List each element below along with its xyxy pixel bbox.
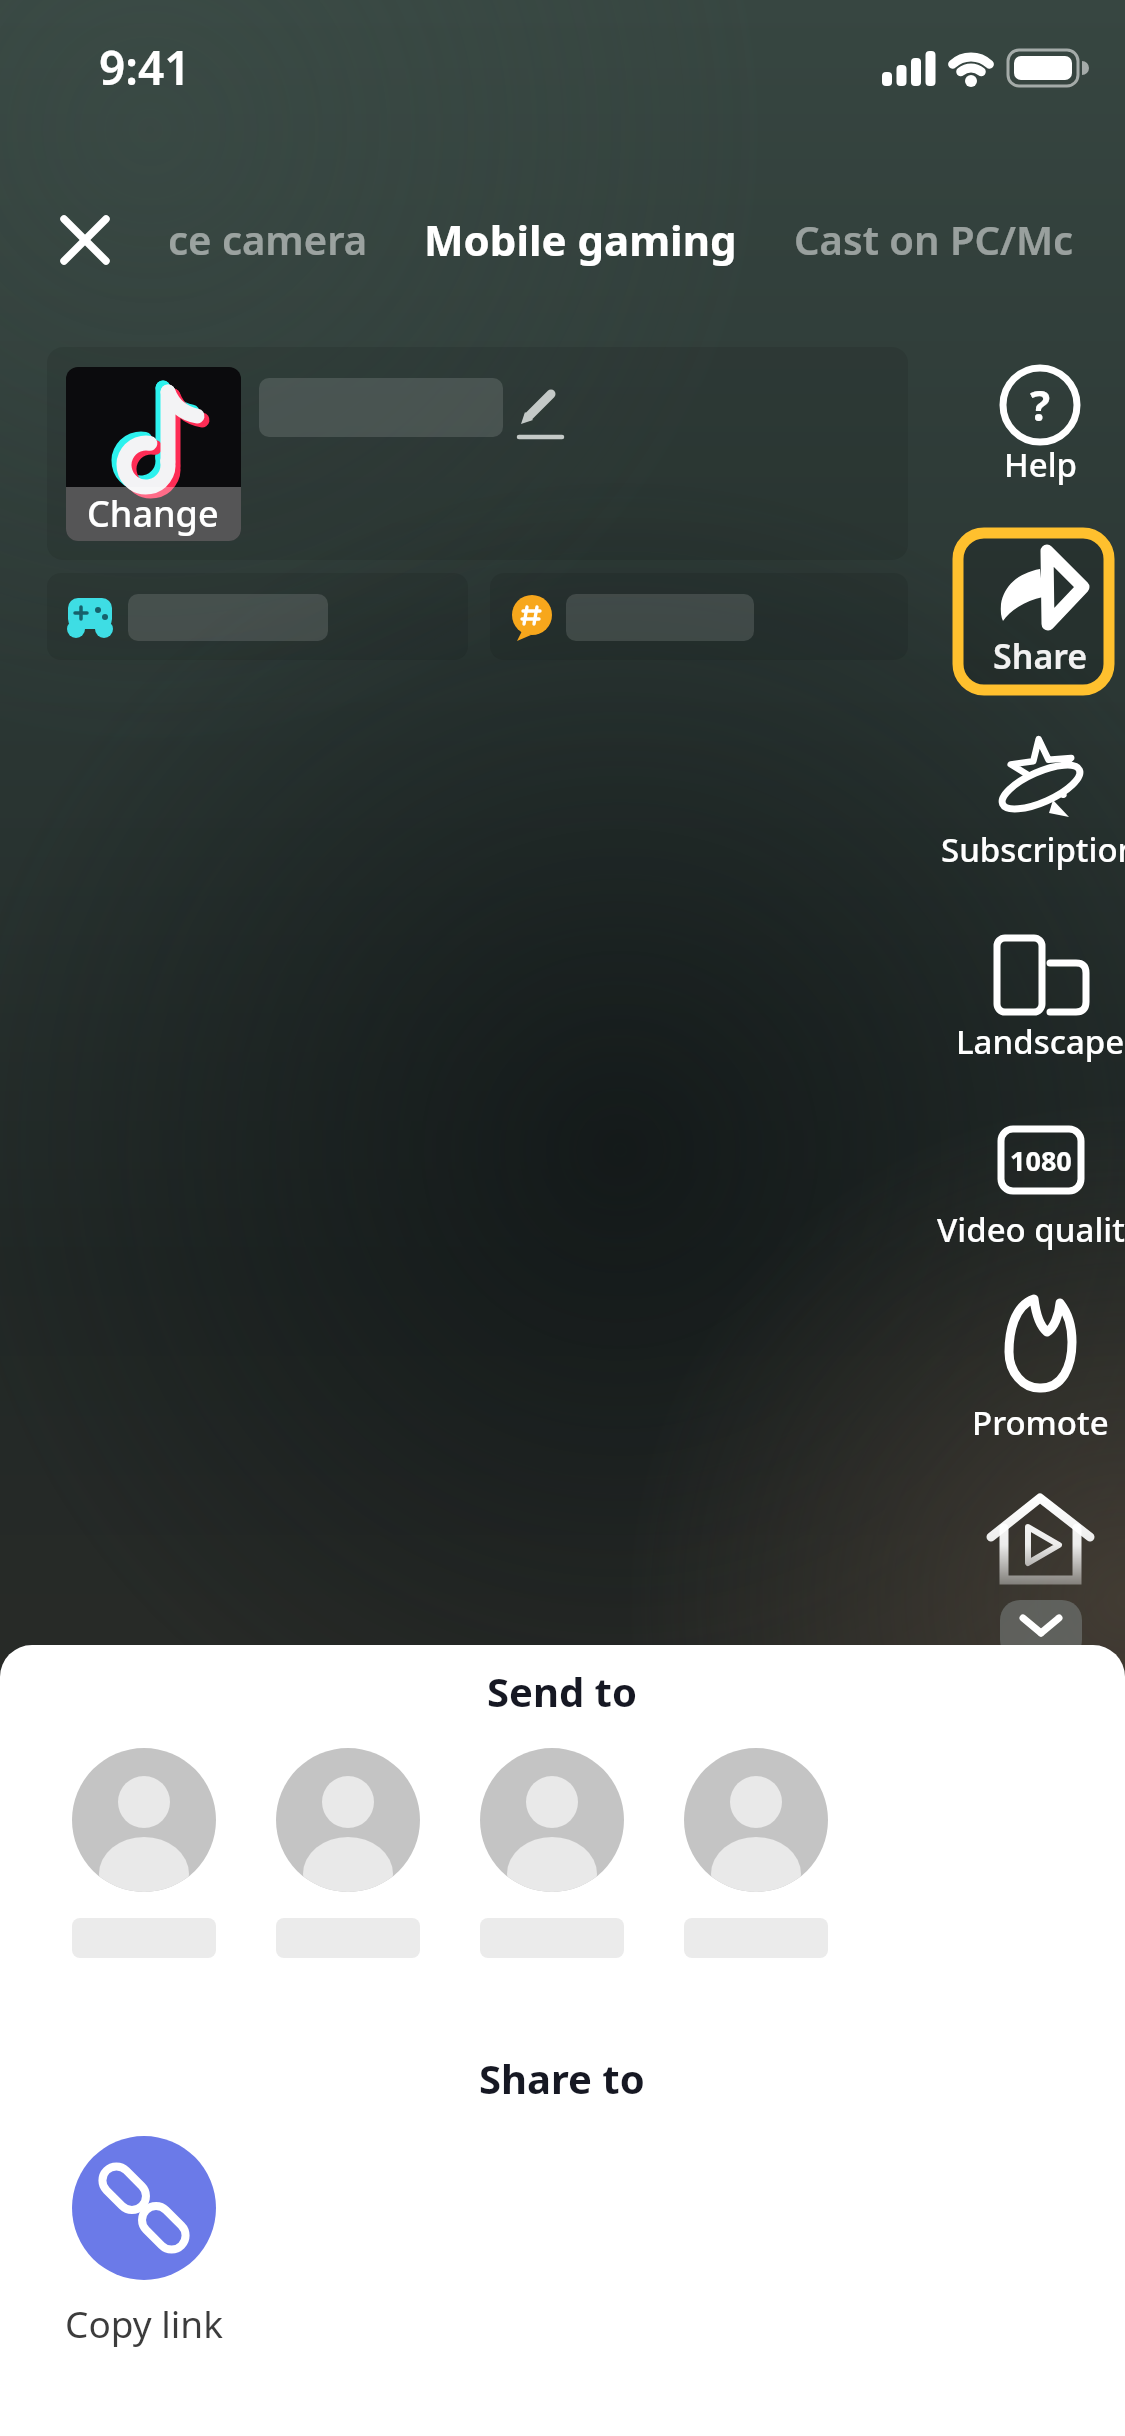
staticText: ce camera — [168, 212, 368, 266]
staticText: Send to — [487, 1664, 637, 1718]
staticText: ? — [1030, 376, 1051, 433]
button[interactable] — [1000, 1612, 1082, 1660]
button[interactable] — [975, 730, 1105, 865]
staticText: Change — [87, 489, 219, 538]
staticText: Copy link — [65, 2298, 223, 2348]
button[interactable] — [47, 573, 468, 660]
staticText: 1080 — [1010, 1142, 1072, 1179]
button[interactable] — [510, 375, 572, 445]
button[interactable] — [980, 930, 1100, 1055]
staticText: Mobile gaming — [424, 211, 737, 268]
button[interactable] — [430, 205, 730, 275]
staticText: Video quality — [937, 1207, 1125, 1252]
button[interactable] — [66, 367, 241, 541]
staticText: Help — [1004, 442, 1077, 487]
button[interactable] — [72, 2136, 216, 2336]
staticText: 9:41 — [99, 36, 191, 99]
button[interactable] — [990, 1490, 1090, 1590]
button[interactable] — [990, 1300, 1090, 1435]
button[interactable] — [785, 205, 1085, 275]
button[interactable] — [480, 1748, 624, 1958]
staticText: Share to — [479, 2051, 645, 2105]
button[interactable] — [52, 207, 118, 273]
button[interactable] — [276, 1748, 420, 1958]
button[interactable] — [684, 1748, 828, 1958]
button[interactable] — [490, 573, 908, 660]
staticText: Promote — [972, 1400, 1109, 1445]
staticText: Landscape — [956, 1019, 1125, 1064]
button[interactable] — [990, 360, 1090, 480]
button[interactable] — [72, 1748, 216, 1958]
staticText: Cast on PC/Mc — [794, 212, 1074, 266]
button[interactable] — [953, 528, 1114, 695]
staticText: Share — [993, 633, 1088, 679]
staticText: Subscription — [941, 827, 1125, 872]
button[interactable] — [165, 205, 375, 275]
button[interactable] — [980, 1120, 1100, 1245]
